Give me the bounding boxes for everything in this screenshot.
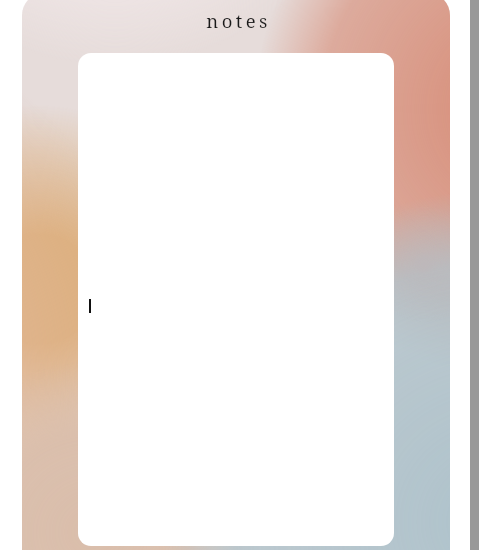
button[interactable]: Note text [78, 53, 394, 546]
button[interactable]: notes [22, 3, 450, 37]
staticText: notes [206, 8, 271, 33]
